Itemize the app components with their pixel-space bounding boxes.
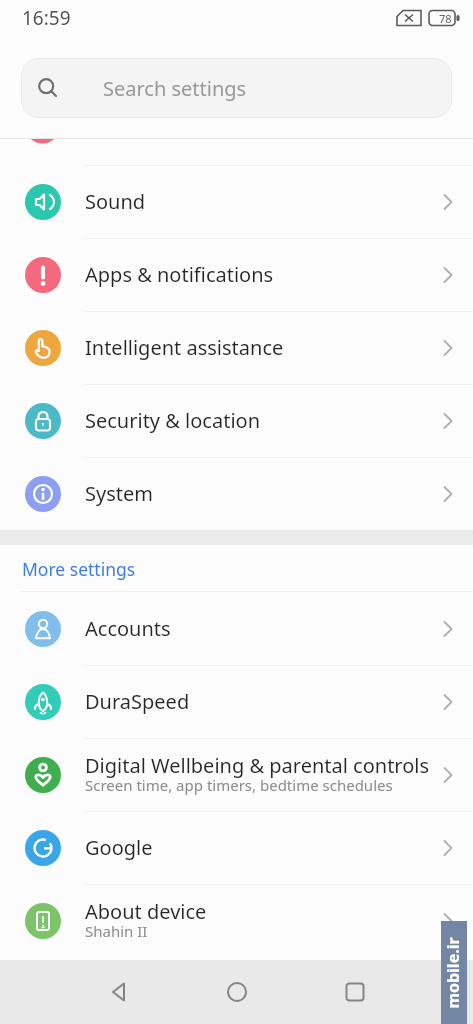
button[interactable] — [198, 960, 276, 1024]
staticText: 78 — [439, 11, 452, 26]
button[interactable]: Intelligent assistance — [0, 311, 473, 384]
button[interactable]: System — [0, 457, 473, 530]
staticText: Accounts — [85, 615, 171, 642]
staticText: Security & location — [85, 407, 261, 434]
button[interactable]: Accounts — [0, 592, 473, 665]
button[interactable]: Security & location — [0, 384, 473, 457]
button[interactable]: Digital Wellbeing & parental controls — [0, 738, 473, 811]
staticText: More settings — [22, 557, 136, 581]
staticText: Search settings — [103, 75, 247, 102]
button[interactable]: Search settings — [21, 58, 452, 118]
staticText: Screen time, app timers, bedtime schedul… — [85, 775, 393, 795]
staticText: DuraSpeed — [85, 688, 190, 715]
staticText: mobile.ir — [441, 921, 467, 1024]
staticText: 16:59 — [22, 5, 71, 31]
button[interactable]: DuraSpeed — [0, 665, 473, 738]
button[interactable] — [80, 960, 158, 1024]
button[interactable]: Apps & notifications — [0, 238, 473, 311]
staticText: Intelligent assistance — [85, 334, 284, 361]
staticText: Sound — [85, 188, 146, 215]
staticText: Shahin II — [85, 921, 148, 941]
button[interactable]: Google — [0, 811, 473, 884]
button[interactable] — [316, 960, 394, 1024]
staticText: Digital Wellbeing & parental controls — [85, 752, 430, 779]
staticText: System — [85, 480, 153, 507]
staticText: Google — [85, 834, 153, 861]
staticText: About device — [85, 898, 207, 925]
button[interactable]: Sound — [0, 165, 473, 238]
button[interactable]: About device — [0, 884, 473, 957]
staticText: Apps & notifications — [85, 261, 274, 288]
